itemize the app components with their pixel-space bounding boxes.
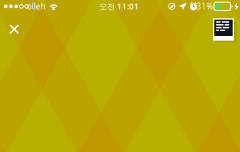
- button[interactable]: Saved photo: [211, 17, 235, 41]
- staticText: olleh: [27, 1, 46, 12]
- button[interactable]: Close: [1, 16, 27, 42]
- staticText: 31%: [196, 1, 213, 12]
- staticText: 오전 11:01: [99, 1, 139, 12]
